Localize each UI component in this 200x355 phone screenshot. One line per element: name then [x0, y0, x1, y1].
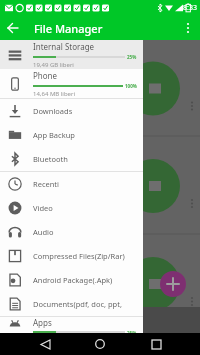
staticText: Android Package(.Apk)	[33, 275, 113, 285]
button[interactable]: App Backup	[0, 123, 143, 147]
staticText: Internal Storage	[33, 41, 95, 52]
staticText: Video	[33, 203, 53, 213]
staticText: 8:33	[183, 3, 197, 13]
staticText: Recenti	[33, 179, 60, 189]
staticText: Apps	[33, 317, 52, 328]
button[interactable]: Back	[34, 333, 56, 355]
button[interactable]: Android Package(.Apk)	[0, 268, 143, 292]
button[interactable]: Home	[89, 333, 111, 355]
staticText: Pizza a Domicilio	[49, 310, 104, 320]
staticText: App Backup	[33, 130, 75, 140]
staticText: Downloads	[33, 106, 73, 116]
staticText: Audio	[33, 227, 54, 237]
staticText: 25%	[127, 330, 137, 333]
button[interactable]: Documents(pdf, doc, ppt, xls, ...)	[0, 292, 143, 316]
button[interactable]: Recenti	[0, 172, 143, 196]
button[interactable]: Apps	[0, 317, 143, 333]
staticText: Documents(pdf, doc, ppt, xls, ...)	[33, 299, 139, 309]
button[interactable]: Back	[0, 16, 24, 40]
button[interactable]: Bluetooth	[0, 147, 143, 171]
button[interactable]: Phone	[0, 69, 143, 98]
button[interactable]: More options	[176, 16, 200, 40]
button[interactable]: Compressed Files(Zip/Rar)	[0, 244, 143, 268]
button[interactable]: Add	[160, 271, 186, 297]
staticText: 19,49 GB liberi	[33, 61, 74, 69]
staticText: Bluetooth	[33, 154, 68, 164]
staticText: 100%	[125, 83, 137, 89]
staticText: Phone	[33, 70, 58, 81]
staticText: 14,64 MB liberi	[33, 90, 75, 98]
staticText: File Manager	[34, 21, 103, 36]
button[interactable]: Recents	[145, 333, 167, 355]
button[interactable]: Video	[0, 196, 143, 220]
staticText: 25%	[127, 54, 137, 60]
staticText: Compressed Files(Zip/Rar)	[33, 251, 125, 261]
button[interactable]: Downloads	[0, 99, 143, 123]
button[interactable]: Internal Storage	[0, 40, 143, 69]
button[interactable]: Pizza a Domicilio	[0, 307, 200, 333]
button[interactable]: Audio	[0, 220, 143, 244]
